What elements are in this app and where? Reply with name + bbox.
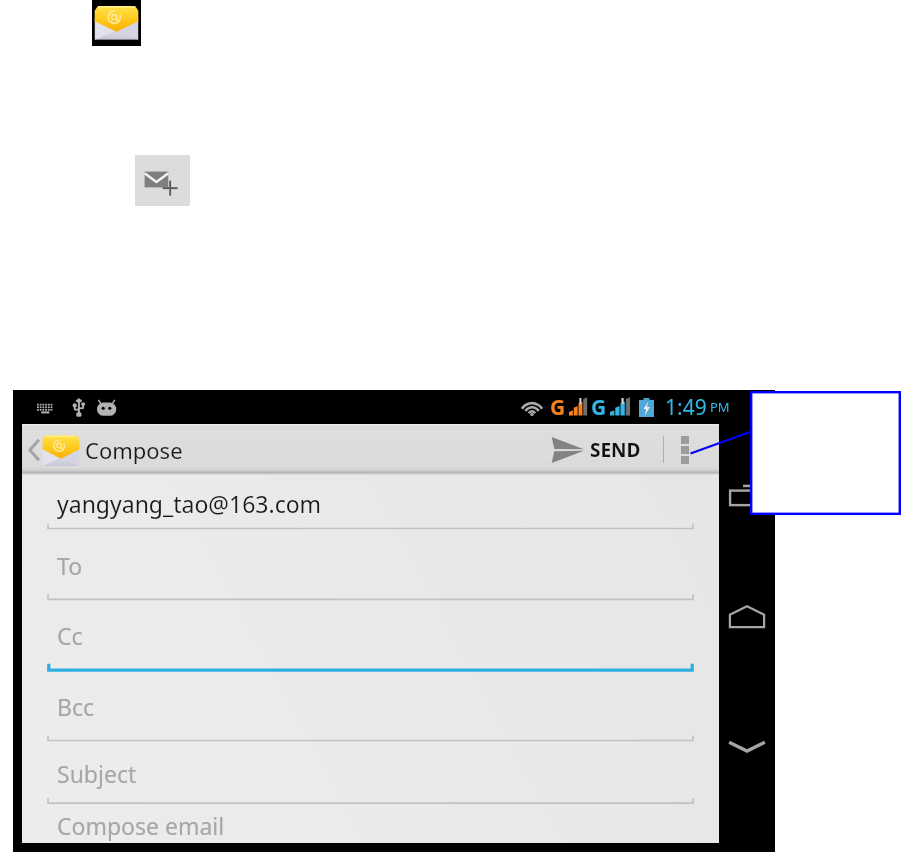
button[interactable]: Compose: [22, 424, 187, 475]
staticText: 1:49: [665, 393, 707, 422]
button[interactable]: Compose email: [22, 803, 719, 847]
button[interactable]: More options: [664, 424, 706, 475]
button[interactable]: To: [22, 529, 719, 601]
staticText: Subject: [57, 758, 137, 789]
staticText: Bcc: [57, 691, 95, 722]
staticText: PM: [710, 398, 730, 416]
button[interactable]: Back: [719, 718, 775, 774]
button[interactable]: Subject: [22, 741, 719, 805]
staticText: To: [57, 550, 83, 581]
button[interactable]: Email application icon: [92, 0, 141, 46]
staticText: G: [550, 393, 566, 422]
button[interactable]: Compose new email icon: [135, 155, 190, 206]
staticText: Compose: [85, 435, 183, 465]
button[interactable]: SEND: [541, 424, 663, 475]
staticText: Compose email: [57, 810, 225, 841]
button[interactable]: Home: [719, 588, 775, 644]
button[interactable]: yangyang_tao@163.com: [22, 475, 719, 531]
staticText: SEND: [590, 437, 641, 463]
staticText: Cc: [57, 620, 83, 651]
button[interactable]: Recent apps: [719, 467, 775, 523]
button[interactable]: Cc: [22, 599, 719, 672]
staticText: yangyang_tao@163.com: [57, 488, 322, 519]
button[interactable]: Bcc: [22, 670, 719, 743]
staticText: G: [591, 393, 607, 422]
